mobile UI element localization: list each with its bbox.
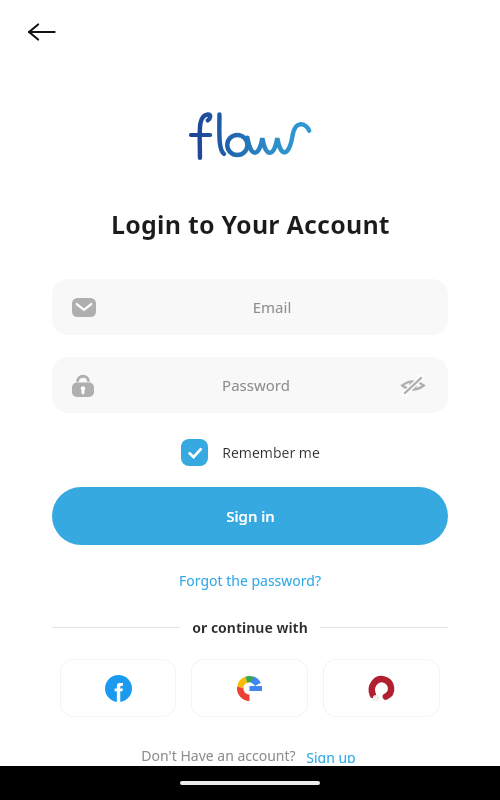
staticText: Forgot the password? <box>179 571 321 590</box>
staticText: Sign up <box>306 748 356 763</box>
button[interactable]: Google <box>191 659 308 717</box>
button[interactable]: Forgot the password? <box>171 567 329 594</box>
button[interactable]: Back <box>18 8 66 56</box>
button[interactable]: Show password <box>398 370 428 400</box>
button[interactable]: Facebook <box>60 659 176 717</box>
staticText: Sign in <box>226 506 275 526</box>
button[interactable]: Email <box>52 279 448 335</box>
staticText: Password <box>114 375 398 395</box>
button[interactable]: Sign in <box>52 487 448 545</box>
staticText: or continue with <box>192 618 308 637</box>
button[interactable]: Remember me <box>179 435 322 470</box>
button[interactable]: Password <box>52 357 448 413</box>
staticText: Don't Have an account? <box>141 746 296 765</box>
button[interactable]: Pinterest <box>323 659 440 717</box>
staticText: Remember me <box>222 443 320 462</box>
button[interactable]: Sign up <box>302 745 360 766</box>
staticText: Login to Your Account <box>111 207 390 241</box>
staticText: Email <box>116 297 428 317</box>
